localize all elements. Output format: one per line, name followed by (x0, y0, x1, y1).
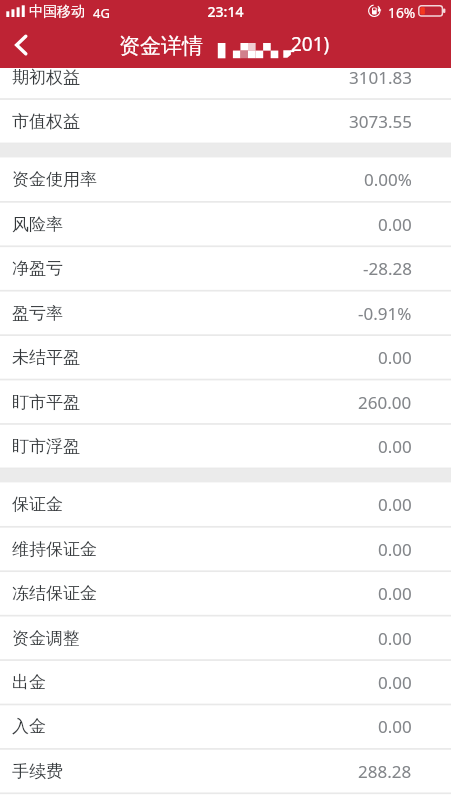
staticText: 3073.55 (349, 110, 412, 133)
staticText: 0.00 (378, 213, 412, 236)
staticText: 未结平盈 (12, 347, 80, 368)
staticText: 手续费 (12, 761, 63, 782)
button[interactable]: 风险率 (0, 202, 451, 246)
button[interactable]: 出金 (0, 660, 451, 704)
staticText: -0.91% (358, 302, 412, 325)
staticText: 3101.83 (349, 66, 412, 89)
staticText: 0.00 (378, 671, 412, 694)
staticText: 0.00 (378, 715, 412, 738)
button[interactable]: 冻结保证金 (0, 571, 451, 615)
button[interactable]: 保证金 (0, 482, 451, 526)
button[interactable]: 未结平盈 (0, 335, 451, 379)
button[interactable]: 期初权益 (0, 55, 451, 99)
staticText: 201) (291, 31, 330, 57)
staticText: 0.00% (364, 168, 412, 191)
staticText: 0.00 (378, 346, 412, 369)
button[interactable]: 手续费 (0, 749, 451, 793)
staticText: 盯市浮盈 (12, 436, 80, 457)
staticText: 保证金 (12, 494, 63, 515)
staticText: 0.00 (378, 627, 412, 650)
staticText: 0.00 (378, 493, 412, 516)
button[interactable]: 入金 (0, 704, 451, 748)
staticText: 期初权益 (12, 67, 80, 88)
staticText: 260.00 (358, 391, 412, 414)
staticText: 资金详情 (119, 33, 203, 59)
staticText: 资金调整 (12, 628, 80, 649)
staticText: 盯市平盈 (12, 392, 80, 413)
staticText: 23:14 (0, 2, 451, 21)
staticText: 净盈亏 (12, 258, 63, 279)
button[interactable]: 盯市浮盈 (0, 424, 451, 468)
button[interactable]: 市值权益 (0, 99, 451, 143)
button[interactable]: 盈亏率 (0, 291, 451, 335)
staticText: -28.28 (363, 257, 412, 280)
staticText: 16% (388, 3, 416, 22)
staticText: 288.28 (358, 760, 412, 783)
staticText: 入金 (12, 716, 46, 737)
button[interactable]: 维持保证金 (0, 527, 451, 571)
staticText: 风险率 (12, 214, 63, 235)
button[interactable]: 盯市平盈 (0, 380, 451, 424)
staticText: 盈亏率 (12, 303, 63, 324)
staticText: 中国移动 (29, 3, 85, 21)
staticText: 4G (93, 4, 110, 22)
staticText: 市值权益 (12, 111, 80, 132)
button[interactable]: 资金使用率 (0, 157, 451, 201)
staticText: 维持保证金 (12, 539, 97, 560)
button[interactable]: 净盈亏 (0, 246, 451, 290)
staticText: 0.00 (378, 582, 412, 605)
staticText: 出金 (12, 672, 46, 693)
staticText: 资金使用率 (12, 169, 97, 190)
button[interactable]: 资金调整 (0, 616, 451, 660)
staticText: 0.00 (378, 538, 412, 561)
staticText: 0.00 (378, 435, 412, 458)
button[interactable]: Back (0, 24, 42, 66)
staticText: 冻结保证金 (12, 583, 97, 604)
